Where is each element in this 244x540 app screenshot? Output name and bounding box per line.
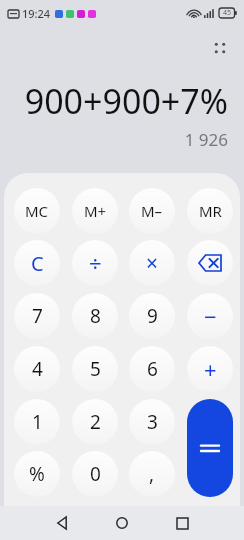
staticText: 9 bbox=[147, 303, 158, 329]
button[interactable]: Home bbox=[108, 509, 136, 537]
staticText: ÷ bbox=[89, 248, 102, 278]
staticText: 45 bbox=[223, 8, 232, 18]
staticText: × bbox=[146, 249, 159, 278]
staticText: 5 bbox=[90, 356, 101, 382]
staticText: MR bbox=[199, 201, 222, 221]
button[interactable]: 6 bbox=[129, 346, 175, 392]
button[interactable]: 7 bbox=[14, 293, 60, 339]
staticText: M– bbox=[141, 201, 163, 221]
staticText: 6 bbox=[147, 356, 158, 382]
button[interactable]: × bbox=[129, 240, 175, 286]
staticText: + bbox=[204, 354, 217, 384]
staticText: % bbox=[29, 461, 45, 487]
button[interactable]: 3 bbox=[129, 399, 175, 445]
staticText: M+ bbox=[84, 201, 107, 221]
button[interactable]: 4 bbox=[14, 346, 60, 392]
button[interactable]: 5 bbox=[72, 346, 118, 392]
staticText: 19:24 bbox=[22, 6, 51, 21]
staticText: 900+900+7% bbox=[24, 78, 228, 124]
staticText: 0 bbox=[90, 461, 101, 487]
button[interactable]: Back bbox=[48, 509, 76, 537]
button[interactable]: M– bbox=[129, 188, 175, 234]
button[interactable]: 2 bbox=[72, 399, 118, 445]
button[interactable]: 1 bbox=[14, 399, 60, 445]
staticText: − bbox=[204, 301, 217, 331]
button[interactable]: Recents bbox=[168, 509, 196, 537]
other: Backspace bbox=[199, 255, 221, 271]
button[interactable]: MR bbox=[187, 188, 233, 234]
button[interactable]: + bbox=[187, 346, 233, 392]
button[interactable]: , bbox=[129, 451, 175, 497]
staticText: 3 bbox=[147, 409, 158, 435]
staticText: 2 bbox=[90, 409, 101, 435]
button[interactable]: 8 bbox=[72, 293, 118, 339]
staticText: MC bbox=[25, 201, 49, 221]
button[interactable]: 0 bbox=[72, 451, 118, 497]
staticText: 1 926 bbox=[184, 128, 228, 151]
button[interactable]: 9 bbox=[129, 293, 175, 339]
button[interactable]: M+ bbox=[72, 188, 118, 234]
button[interactable]: % bbox=[14, 451, 60, 497]
staticText: , bbox=[149, 461, 155, 487]
button[interactable]: Equals bbox=[187, 399, 233, 497]
button[interactable]: C bbox=[14, 240, 60, 286]
button[interactable]: − bbox=[187, 293, 233, 339]
staticText: 1 bbox=[32, 409, 43, 435]
button[interactable]: Backspace bbox=[187, 240, 233, 286]
staticText: 8 bbox=[90, 303, 101, 329]
staticText: C bbox=[31, 250, 44, 277]
button[interactable]: MC bbox=[14, 188, 60, 234]
staticText: 7 bbox=[32, 303, 43, 329]
button[interactable]: ÷ bbox=[72, 240, 118, 286]
staticText: 4 bbox=[32, 356, 43, 382]
button[interactable]: History bbox=[208, 36, 232, 60]
